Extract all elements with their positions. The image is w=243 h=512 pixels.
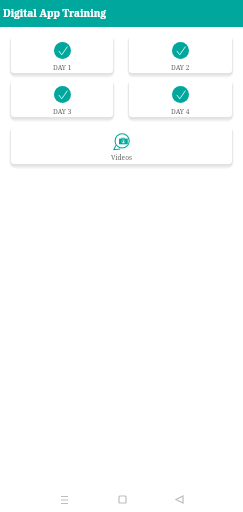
staticText: Videos xyxy=(111,153,132,162)
staticText: DAY 1 xyxy=(53,63,72,72)
button[interactable]: DAY 1 xyxy=(11,36,113,73)
button[interactable]: DAY 3 xyxy=(11,80,113,117)
button[interactable]: Back xyxy=(166,487,192,512)
button[interactable]: Videos xyxy=(11,127,232,164)
staticText: DAY 2 xyxy=(171,63,190,72)
button[interactable]: Recent apps xyxy=(51,487,77,512)
button[interactable]: DAY 2 xyxy=(129,36,232,73)
staticText: Digital App Training xyxy=(3,6,107,20)
button[interactable]: Home xyxy=(109,487,135,512)
button[interactable]: DAY 4 xyxy=(129,80,232,117)
staticText: DAY 4 xyxy=(171,107,190,116)
staticText: DAY 3 xyxy=(53,107,72,116)
